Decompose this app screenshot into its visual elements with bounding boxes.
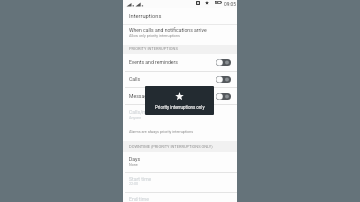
staticText: End time	[129, 196, 149, 202]
staticText: DOWNTIME (PRIORITY INTERRUPTIONS ONLY)	[129, 144, 213, 149]
button[interactable]: Calls	[123, 71, 237, 87]
staticText: Start time	[129, 176, 152, 182]
staticText: PRIORITY INTERRUPTIONS	[129, 46, 178, 51]
staticText: Alarms are always priority interruptions	[129, 130, 194, 134]
button[interactable]: Messages	[123, 88, 237, 105]
button[interactable]	[123, 26, 237, 44]
staticText: Days	[129, 156, 141, 162]
staticText: 22:00	[129, 182, 139, 186]
staticText: 09:05	[224, 2, 236, 8]
button[interactable]	[123, 105, 237, 123]
button[interactable]	[123, 152, 237, 172]
staticText: Calls/messages from	[129, 109, 178, 115]
button[interactable]	[123, 173, 237, 193]
button[interactable]	[123, 192, 237, 201]
staticText: Anyone	[129, 116, 142, 120]
staticText: Messages	[129, 93, 153, 99]
staticText: None	[129, 163, 138, 167]
staticText: Priority interruptions only	[155, 105, 205, 110]
staticText: Allow only priority interruptions	[129, 34, 180, 38]
button[interactable]: Events and reminders	[123, 54, 237, 71]
staticText: When calls and notifications arrive	[129, 27, 207, 33]
staticText: Calls	[129, 76, 141, 82]
staticText: Events and reminders	[129, 59, 178, 65]
staticText: Interruptions	[129, 13, 162, 20]
